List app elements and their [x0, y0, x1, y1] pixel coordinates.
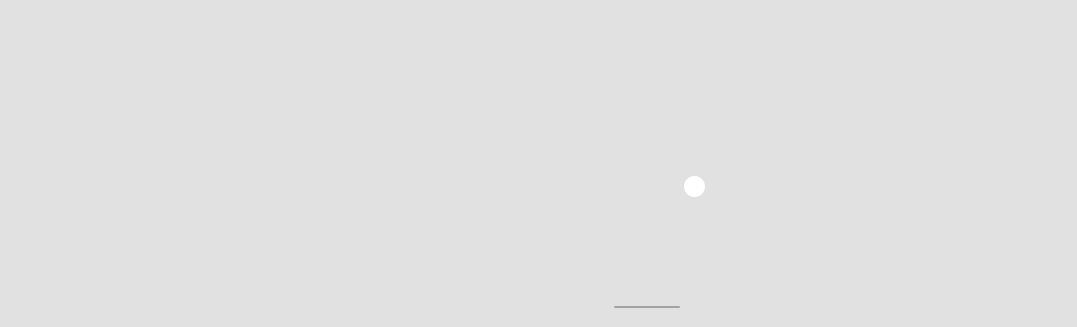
button[interactable]: Record [684, 176, 705, 197]
